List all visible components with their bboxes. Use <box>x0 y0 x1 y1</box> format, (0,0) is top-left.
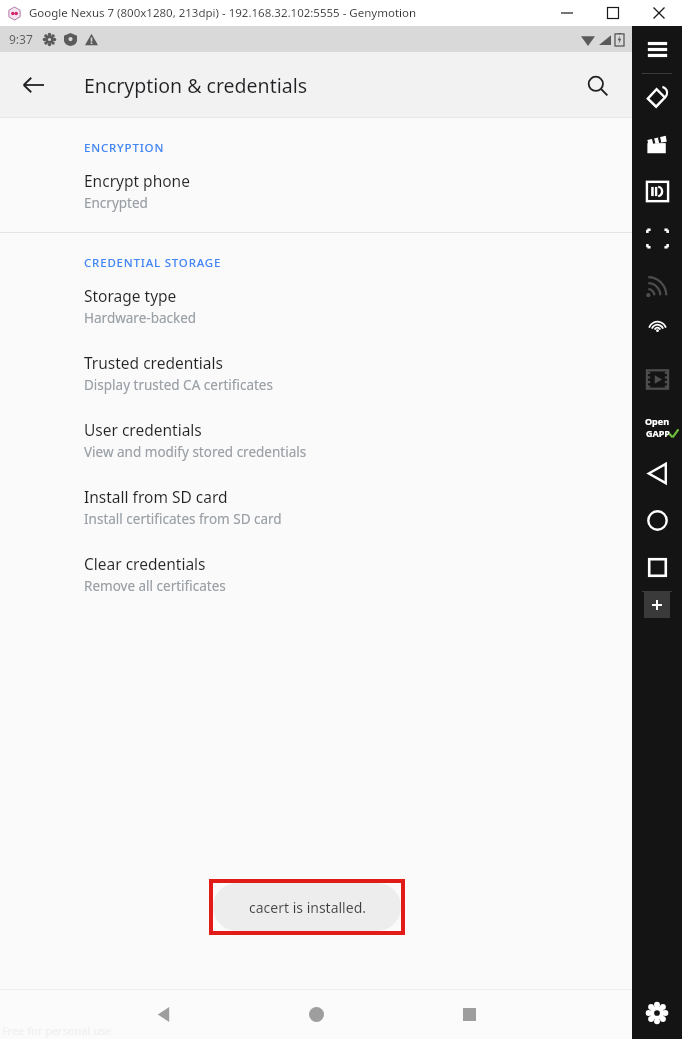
staticText: cacert is installed. <box>249 898 366 917</box>
staticText: Remove all certificates <box>84 577 226 595</box>
button[interactable]: Settings <box>633 989 681 1037</box>
staticText: GAPP <box>646 427 670 439</box>
button[interactable]: Trusted credentials <box>0 352 632 394</box>
button[interactable]: Home <box>293 991 339 1037</box>
button[interactable]: Storage type <box>0 285 632 327</box>
button[interactable]: Minimize <box>544 0 590 26</box>
button[interactable]: Navigate up <box>10 62 56 108</box>
staticText: Install certificates from SD card <box>84 510 282 528</box>
button[interactable]: Maximize <box>590 0 636 26</box>
button[interactable]: Media <box>632 356 682 403</box>
button[interactable]: Search <box>574 62 620 108</box>
button[interactable]: Clear credentials <box>0 553 632 595</box>
button[interactable]: Back <box>140 991 186 1037</box>
button[interactable]: Back <box>632 450 682 497</box>
button[interactable]: Recent apps <box>446 991 492 1037</box>
button[interactable]: User credentials <box>0 419 632 461</box>
staticText: Google Nexus 7 (800x1280, 213dpi) - 192.… <box>29 5 417 21</box>
staticText: Encryption & credentials <box>84 72 308 99</box>
button[interactable]: Install from SD card <box>0 486 632 528</box>
button[interactable]: Menu <box>632 26 682 73</box>
staticText: Trusted credentials <box>84 352 223 373</box>
staticText: Free for personal use <box>2 1023 112 1038</box>
button[interactable]: Network <box>632 262 682 309</box>
button[interactable]: Add widget <box>644 592 670 618</box>
staticText: Storage type <box>84 285 177 306</box>
staticText: User credentials <box>84 419 202 440</box>
staticText: Clear credentials <box>84 553 206 574</box>
staticText: Open <box>645 415 670 427</box>
staticText: CREDENTIAL STORAGE <box>84 255 222 271</box>
staticText: Encrypt phone <box>84 170 190 191</box>
button[interactable]: Identifiers <box>632 168 682 215</box>
button[interactable]: Close <box>636 0 682 26</box>
staticText: Install from SD card <box>84 486 228 507</box>
staticText: View and modify stored credentials <box>84 443 307 461</box>
staticText: 9:37 <box>9 31 33 47</box>
button[interactable]: GPS <box>632 309 682 356</box>
button[interactable]: Encrypt phone <box>0 170 632 212</box>
staticText: ENCRYPTION <box>84 140 165 156</box>
button[interactable]: 1:1 scale <box>632 215 682 262</box>
staticText: Display trusted CA certificates <box>84 376 273 394</box>
button[interactable]: Rotate <box>632 74 682 121</box>
button[interactable]: Screen record <box>632 121 682 168</box>
button[interactable]: Recent apps <box>632 544 682 591</box>
button[interactable]: Home <box>632 497 682 544</box>
staticText: Hardware-backed <box>84 309 197 327</box>
button[interactable]: Open GApps <box>632 403 682 450</box>
staticText: Encrypted <box>84 194 148 212</box>
